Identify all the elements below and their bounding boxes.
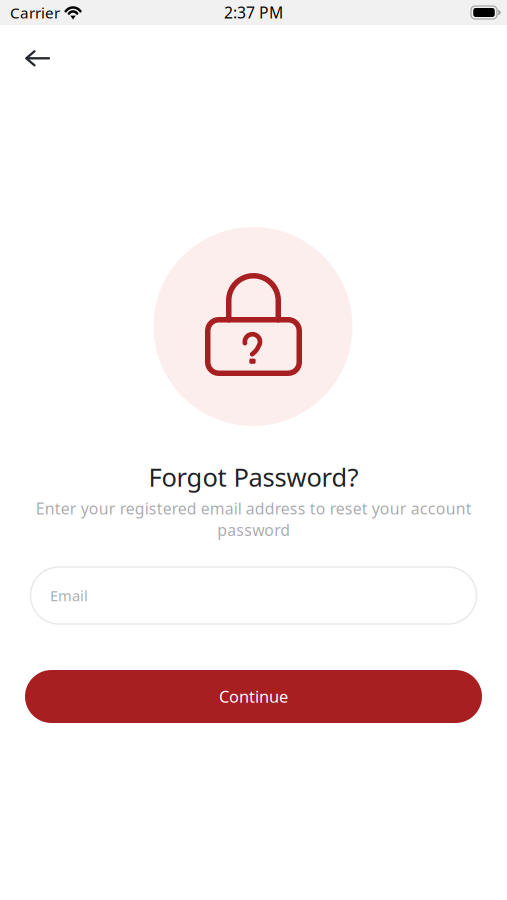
staticText: Continue bbox=[219, 685, 288, 708]
button[interactable]: Continue bbox=[25, 670, 482, 723]
staticText: Carrier bbox=[10, 2, 60, 23]
staticText: 2:37 PM bbox=[224, 2, 283, 23]
staticText: Enter your registered email address to r… bbox=[35, 497, 471, 540]
button[interactable]: Email bbox=[30, 567, 476, 624]
staticText: Email bbox=[50, 585, 88, 605]
staticText: Forgot Password? bbox=[148, 459, 358, 494]
button[interactable]: Back bbox=[16, 36, 60, 80]
